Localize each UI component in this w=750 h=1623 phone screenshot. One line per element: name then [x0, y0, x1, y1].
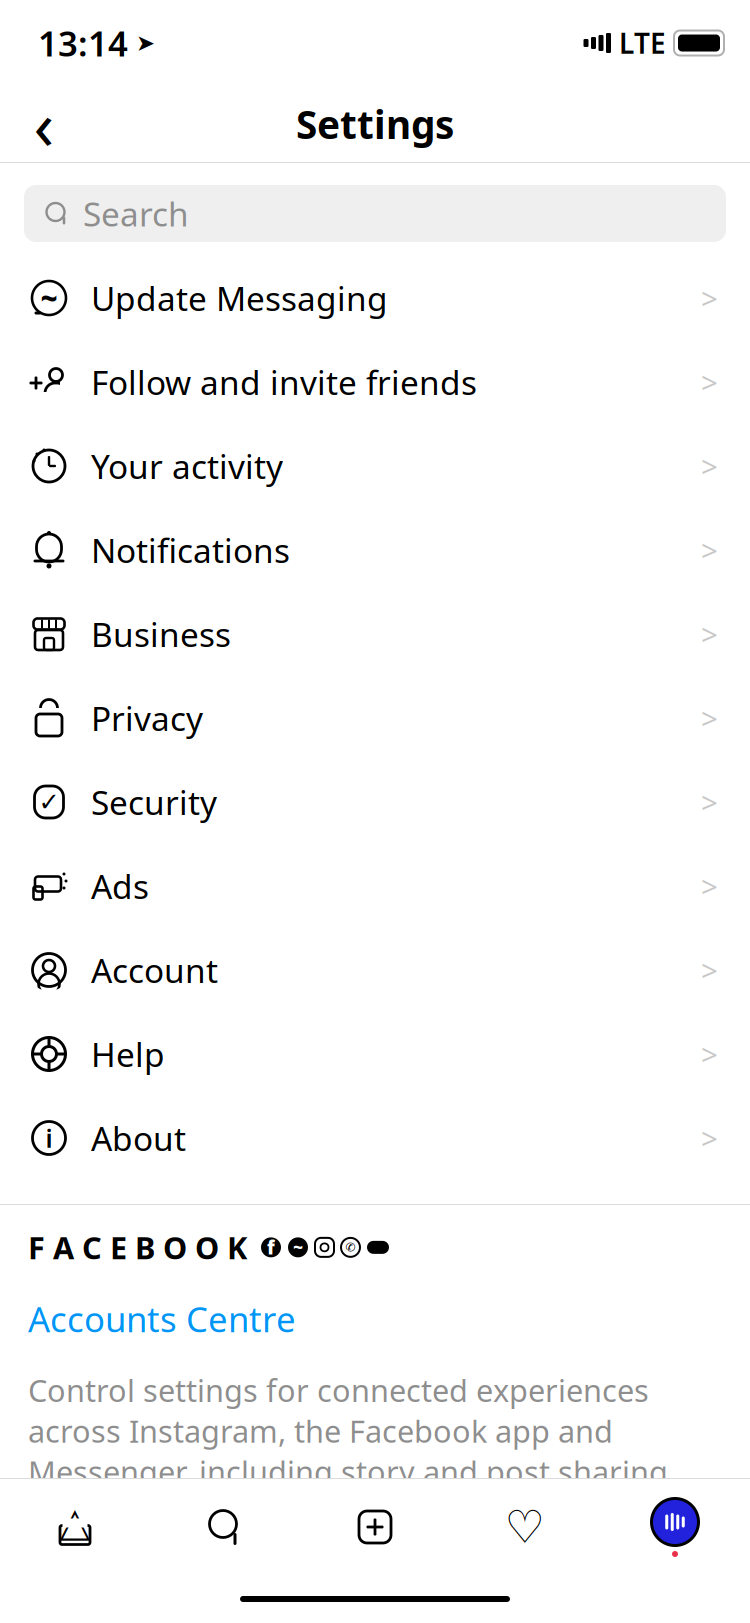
button[interactable]: Ads: [0, 844, 750, 928]
staticText: ‹: [33, 80, 54, 168]
staticText: >: [701, 1034, 718, 1073]
staticText: Security: [91, 780, 217, 824]
staticText: About: [91, 1116, 186, 1160]
button[interactable]: i: [0, 1096, 750, 1180]
staticText: >: [701, 278, 718, 317]
staticText: >: [701, 362, 718, 401]
button[interactable]: Home: [53, 1505, 97, 1549]
staticText: Account: [91, 948, 218, 992]
button[interactable]: Follow and invite friends: [0, 340, 750, 424]
button[interactable]: Back: [12, 92, 76, 156]
staticText: Settings: [296, 98, 454, 150]
button[interactable]: Help: [0, 1012, 750, 1096]
staticText: Accounts Centre: [28, 1296, 296, 1342]
staticText: >: [701, 866, 718, 905]
staticText: Help: [91, 1032, 165, 1076]
staticText: Your activity: [91, 444, 283, 488]
button[interactable]: Search: [203, 1505, 247, 1549]
button[interactable]: Create: [353, 1505, 397, 1549]
staticText: f: [267, 1235, 275, 1260]
staticText: >: [701, 698, 718, 737]
staticText: 13:14: [38, 20, 128, 66]
staticText: >: [701, 530, 718, 569]
button[interactable]: ✓: [0, 760, 750, 844]
button[interactable]: Notifications: [0, 508, 750, 592]
button[interactable]: Accounts Centre: [28, 1290, 296, 1348]
staticText: Search: [83, 191, 189, 236]
staticText: >: [701, 446, 718, 485]
staticText: Update Messaging: [91, 276, 388, 320]
staticText: Ads: [91, 864, 149, 908]
staticText: ➤: [136, 30, 155, 56]
staticText: ~: [40, 278, 57, 317]
staticText: i: [45, 1121, 52, 1155]
staticText: △: [59, 1499, 90, 1545]
button[interactable]: Activity: [503, 1505, 547, 1549]
staticText: Control settings for connected experienc…: [28, 1370, 668, 1533]
staticText: >: [701, 1118, 718, 1157]
staticText: Business: [91, 612, 231, 656]
button[interactable]: Profile: [647, 1496, 703, 1558]
button[interactable]: Privacy: [0, 676, 750, 760]
staticText: F A C E B O O K: [28, 1227, 247, 1268]
staticText: ~: [293, 1236, 303, 1259]
button[interactable]: Business: [0, 592, 750, 676]
staticText: >: [701, 614, 718, 653]
staticText: Privacy: [91, 696, 203, 740]
button[interactable]: Your activity: [0, 424, 750, 508]
button[interactable]: ~: [0, 256, 750, 340]
staticText: >: [701, 950, 718, 989]
button[interactable]: Account: [0, 928, 750, 1012]
staticText: >: [701, 782, 718, 821]
staticText: ♡: [504, 1501, 545, 1553]
staticText: ✓: [38, 788, 59, 816]
staticText: Notifications: [91, 528, 290, 572]
staticText: LTE: [619, 24, 666, 62]
staticText: ✆: [345, 1241, 355, 1254]
staticText: Follow and invite friends: [91, 360, 477, 404]
